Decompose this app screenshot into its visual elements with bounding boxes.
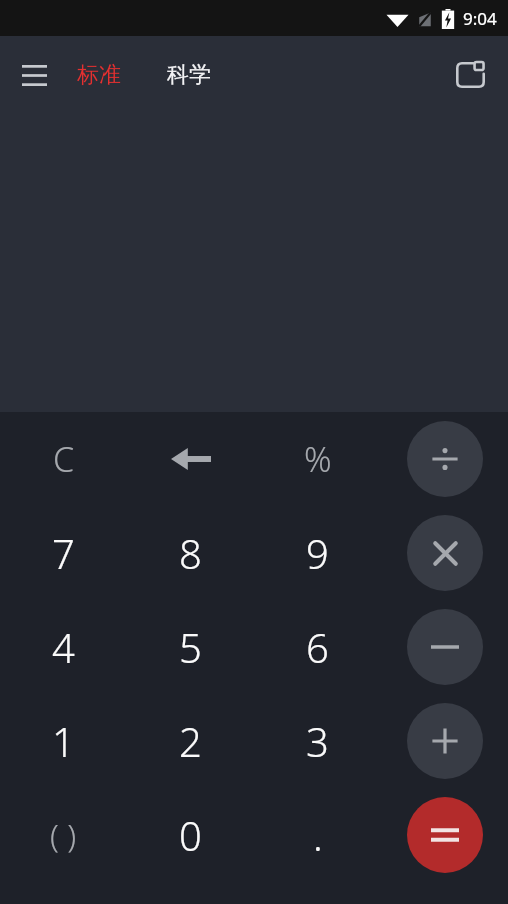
- staticText: 2: [179, 714, 202, 768]
- button[interactable]: 标准: [68, 52, 130, 98]
- button[interactable]: Backspace: [127, 412, 254, 506]
- staticText: 5: [179, 620, 202, 674]
- button[interactable]: 8: [127, 506, 254, 600]
- staticText: 标准: [77, 61, 121, 89]
- button[interactable]: 9: [254, 506, 381, 600]
- button[interactable]: C: [0, 412, 127, 506]
- button[interactable]: 科学: [158, 52, 220, 98]
- button[interactable]: 6: [254, 600, 381, 694]
- staticText: C: [53, 436, 75, 482]
- button[interactable]: Equals: [407, 797, 483, 873]
- button[interactable]: 0: [127, 788, 254, 882]
- staticText: 9:04: [463, 7, 497, 30]
- staticText: 0: [179, 808, 202, 862]
- button[interactable]: .: [254, 788, 381, 882]
- button[interactable]: 2: [127, 694, 254, 788]
- button[interactable]: Divide: [407, 421, 483, 497]
- button[interactable]: History: [446, 51, 494, 99]
- staticText: 8: [179, 526, 202, 580]
- staticText: 7: [52, 526, 75, 580]
- staticText: %: [304, 436, 332, 482]
- button[interactable]: Menu: [10, 51, 58, 99]
- staticText: 4: [52, 620, 75, 674]
- button[interactable]: 3: [254, 694, 381, 788]
- button[interactable]: 5: [127, 600, 254, 694]
- staticText: 1: [52, 714, 75, 768]
- staticText: .: [313, 808, 323, 862]
- staticText: 3: [306, 714, 329, 768]
- button[interactable]: 7: [0, 506, 127, 600]
- staticText: ( ): [50, 813, 77, 857]
- button[interactable]: Minus: [407, 609, 483, 685]
- staticText: 9: [306, 526, 329, 580]
- button[interactable]: %: [254, 412, 381, 506]
- button[interactable]: ( ): [0, 788, 127, 882]
- button[interactable]: 4: [0, 600, 127, 694]
- staticText: 6: [306, 620, 329, 674]
- button[interactable]: Plus: [407, 703, 483, 779]
- staticText: 科学: [167, 61, 211, 89]
- button[interactable]: 1: [0, 694, 127, 788]
- button[interactable]: Multiply: [407, 515, 483, 591]
